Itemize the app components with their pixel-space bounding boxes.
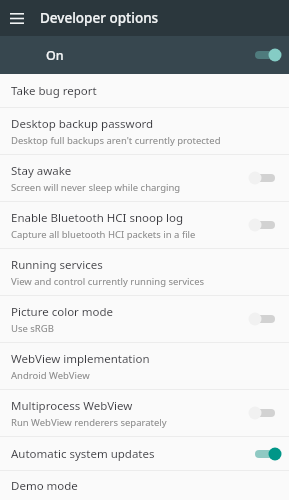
staticText: Multiprocess WebView [11, 398, 133, 414]
button[interactable]: WebView implementation [0, 343, 289, 389]
staticText: Use sRGB [11, 322, 54, 335]
button[interactable]: Running services [0, 249, 289, 295]
staticText: Demo mode [11, 478, 78, 494]
staticText: On [46, 47, 252, 64]
button[interactable]: Automatic system updates [0, 437, 289, 470]
button[interactable]: Desktop backup password [0, 108, 289, 154]
button[interactable]: Stay awake [0, 155, 289, 201]
button[interactable]: On [0, 36, 289, 74]
staticText: Picture color mode [11, 304, 114, 320]
staticText: View and control currently running servi… [11, 275, 205, 288]
button[interactable]: Enable Bluetooth HCI snoop log [0, 202, 289, 248]
button[interactable]: Take bug report [0, 74, 289, 107]
staticText: Desktop backup password [11, 116, 154, 132]
staticText: Run WebView renderers separately [11, 416, 167, 429]
staticText: WebView implementation [11, 351, 150, 367]
staticText: Developer options [40, 9, 159, 27]
staticText: Desktop full backups aren't currently pr… [11, 134, 221, 147]
button[interactable]: Picture color mode [0, 296, 289, 342]
staticText: Automatic system updates [11, 446, 155, 462]
staticText: Running services [11, 257, 103, 273]
staticText: Take bug report [11, 83, 97, 99]
button[interactable]: Demo mode [0, 471, 289, 500]
button[interactable]: Multiprocess WebView [0, 390, 289, 436]
staticText: Stay awake [11, 163, 72, 179]
button[interactable]: Open navigation menu [6, 7, 28, 29]
staticText: Screen will never sleep while charging [11, 181, 181, 194]
staticText: Android WebView [11, 369, 90, 382]
staticText: Capture all bluetooth HCI packets in a f… [11, 228, 196, 241]
staticText: Enable Bluetooth HCI snoop log [11, 210, 184, 226]
